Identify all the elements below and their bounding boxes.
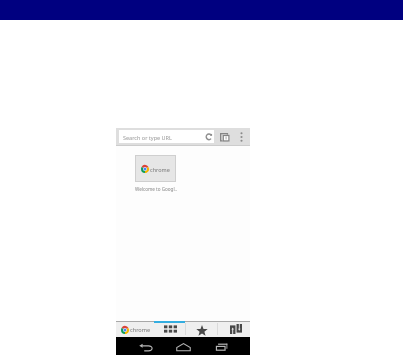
button[interactable]: Bookmarks — [186, 321, 217, 337]
staticText: chrome — [130, 326, 151, 334]
button[interactable]: Reload — [203, 130, 214, 143]
button[interactable]: chrome — [135, 155, 176, 182]
button[interactable]: Tabs — [218, 128, 232, 145]
staticText: Search or type URL — [123, 134, 172, 141]
button[interactable]: chrome — [116, 321, 154, 337]
button[interactable]: Search or type URL — [119, 130, 214, 143]
button[interactable]: Home — [172, 337, 194, 355]
button[interactable]: Most visited — [154, 321, 185, 337]
staticText: Welcome to Googl.. — [135, 186, 178, 192]
staticText: chrome — [150, 166, 170, 173]
button[interactable]: More options — [235, 128, 247, 145]
button[interactable]: Back — [133, 337, 155, 355]
button[interactable]: Recent apps — [211, 337, 233, 355]
button[interactable]: Other devices — [218, 321, 250, 337]
